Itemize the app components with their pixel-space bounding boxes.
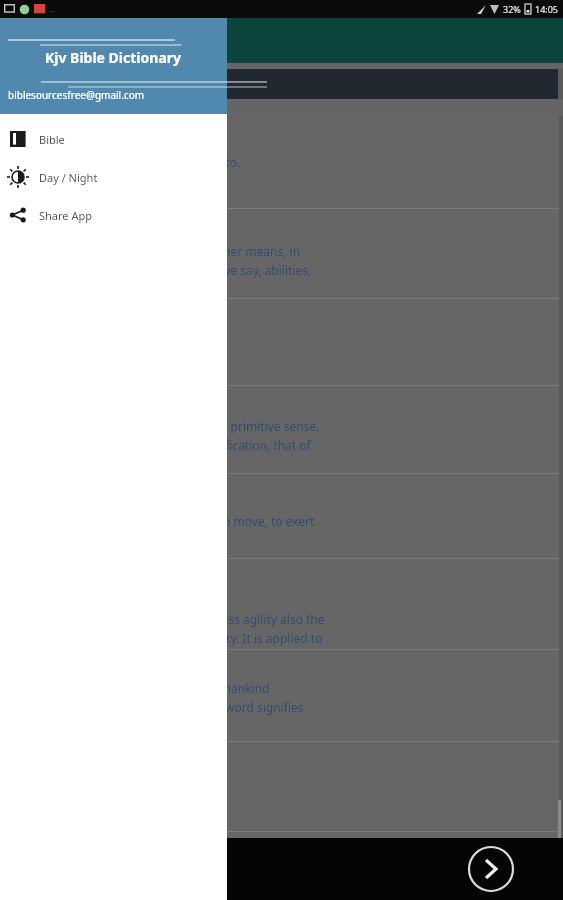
staticText: Day / Night [39, 170, 98, 185]
button[interactable]: being active the active faculty nimblene… [4, 559, 559, 650]
staticText: Bible [39, 132, 65, 147]
button[interactable]: n? [0, 838, 563, 900]
button[interactable]: ead, bring, do, perform, or in general t… [4, 474, 559, 559]
staticText: 14:05 [535, 3, 559, 15]
button[interactable]: ained, or received from art, labor, or o… [4, 209, 559, 299]
staticText: Kjv Bible Dictionary [45, 48, 182, 67]
button[interactable]: Share App [0, 196, 227, 234]
staticText: ained, or received from art, labor, or o… [6, 243, 301, 259]
staticText: s which are bestowed by nature. Thus we … [6, 262, 312, 278]
button[interactable]: in these languages, the word retains its… [4, 386, 559, 474]
staticText: arily, the name of the human species, ma… [6, 680, 270, 696]
staticText: ... [49, 5, 55, 15]
staticText: known to giving notice, or information t… [6, 154, 241, 170]
button[interactable] [5, 69, 558, 99]
staticText: Share App [39, 208, 92, 223]
staticText: ead, bring, do, perform, or in general t… [6, 513, 315, 529]
button[interactable] [4, 832, 559, 872]
button[interactable] [4, 299, 559, 386]
staticText: being active the active faculty nimblene… [6, 611, 325, 627]
staticText: biblesourcesfree@gmail.com [8, 88, 145, 102]
button[interactable]: s a word of Celtic origin. [4, 742, 559, 832]
staticText: 32% [503, 3, 521, 15]
staticText: s pursuit of business as, a man of activ… [6, 630, 323, 646]
staticText: in these languages, the word retains its… [6, 418, 320, 434]
staticText: ield. In Eng. it retained its original s… [6, 437, 311, 453]
button[interactable]: known to giving notice, or information t… [4, 116, 559, 209]
staticText: the progenitor of the human race. The wo… [6, 699, 304, 715]
button[interactable]: Bible [0, 120, 227, 158]
button[interactable]: Open ad [467, 845, 515, 893]
button[interactable]: arily, the name of the human species, ma… [4, 650, 559, 742]
button[interactable]: Day / Night [0, 158, 227, 196]
